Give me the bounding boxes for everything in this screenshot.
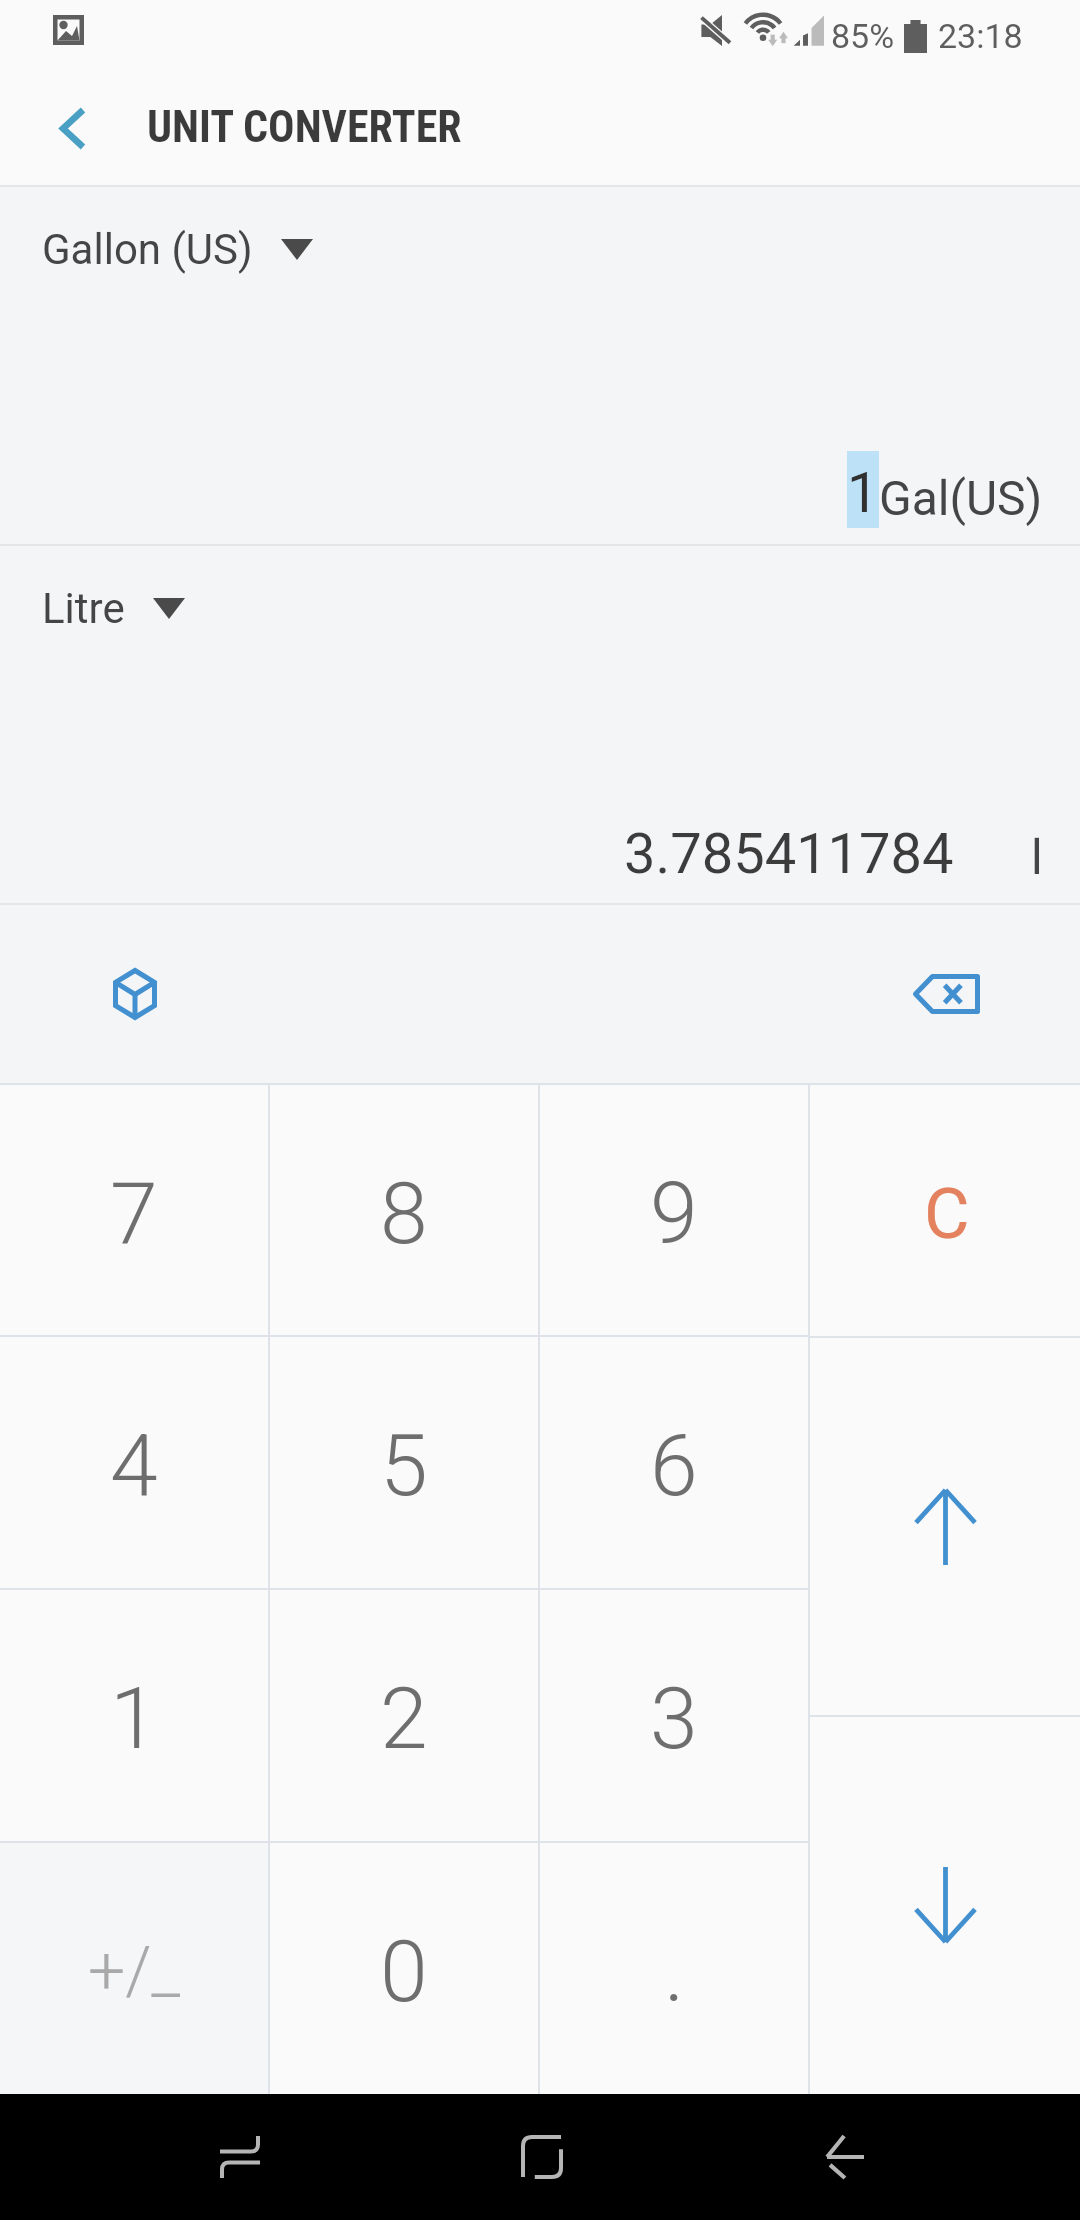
staticText: 5 xyxy=(380,1415,428,1516)
button[interactable]: Litre xyxy=(42,584,185,633)
staticText: 1 xyxy=(110,1668,158,1769)
button[interactable]: Home xyxy=(391,2094,693,2220)
staticText: l xyxy=(1031,829,1043,885)
button[interactable]: C xyxy=(810,1085,1080,1336)
staticText: 4 xyxy=(110,1415,158,1516)
button[interactable]: +/_ xyxy=(0,1843,268,2094)
staticText: . xyxy=(664,1921,685,2022)
button[interactable]: 2 xyxy=(270,1590,538,1841)
staticText: Gallon (US) xyxy=(42,225,253,274)
staticText: 0 xyxy=(380,1921,428,2022)
button[interactable]: Unit list xyxy=(80,939,190,1049)
button[interactable]: 1 xyxy=(0,1590,268,1841)
staticText: 23:18 xyxy=(938,16,1023,56)
button[interactable]: . xyxy=(540,1843,808,2094)
button[interactable]: 0 xyxy=(270,1843,538,2094)
staticText: C xyxy=(924,1173,970,1255)
button[interactable]: Swap units up xyxy=(810,1338,1080,1715)
staticText: UNIT CONVERTER xyxy=(147,101,462,153)
button[interactable]: Back xyxy=(693,2094,995,2220)
staticText: 1 xyxy=(847,460,879,526)
button[interactable]: 5 xyxy=(270,1337,538,1588)
staticText: 2 xyxy=(380,1668,428,1769)
staticText: 9 xyxy=(650,1163,698,1264)
button[interactable]: 4 xyxy=(0,1337,268,1588)
staticText: 3.785411784 xyxy=(624,821,954,887)
button[interactable]: 7 xyxy=(0,1085,268,1335)
button[interactable]: 6 xyxy=(540,1337,808,1588)
staticText: 8 xyxy=(380,1163,428,1264)
button[interactable]: 9 xyxy=(540,1085,808,1335)
staticText: Gal(US) xyxy=(879,470,1043,526)
button[interactable]: Navigate up xyxy=(0,75,147,187)
button[interactable]: Recent apps xyxy=(88,2094,391,2220)
button[interactable]: 3 xyxy=(540,1590,808,1841)
button[interactable]: Backspace xyxy=(891,939,1001,1049)
staticText: 6 xyxy=(650,1415,698,1516)
staticText: 85% xyxy=(831,16,895,56)
button[interactable]: Swap units down xyxy=(810,1717,1080,2094)
button[interactable]: 8 xyxy=(270,1085,538,1335)
staticText: 7 xyxy=(110,1163,158,1264)
staticText: Litre xyxy=(42,584,125,633)
button[interactable]: Gallon (US) xyxy=(42,225,313,274)
staticText: +/_ xyxy=(88,1933,180,2010)
staticText: 3 xyxy=(650,1668,698,1769)
